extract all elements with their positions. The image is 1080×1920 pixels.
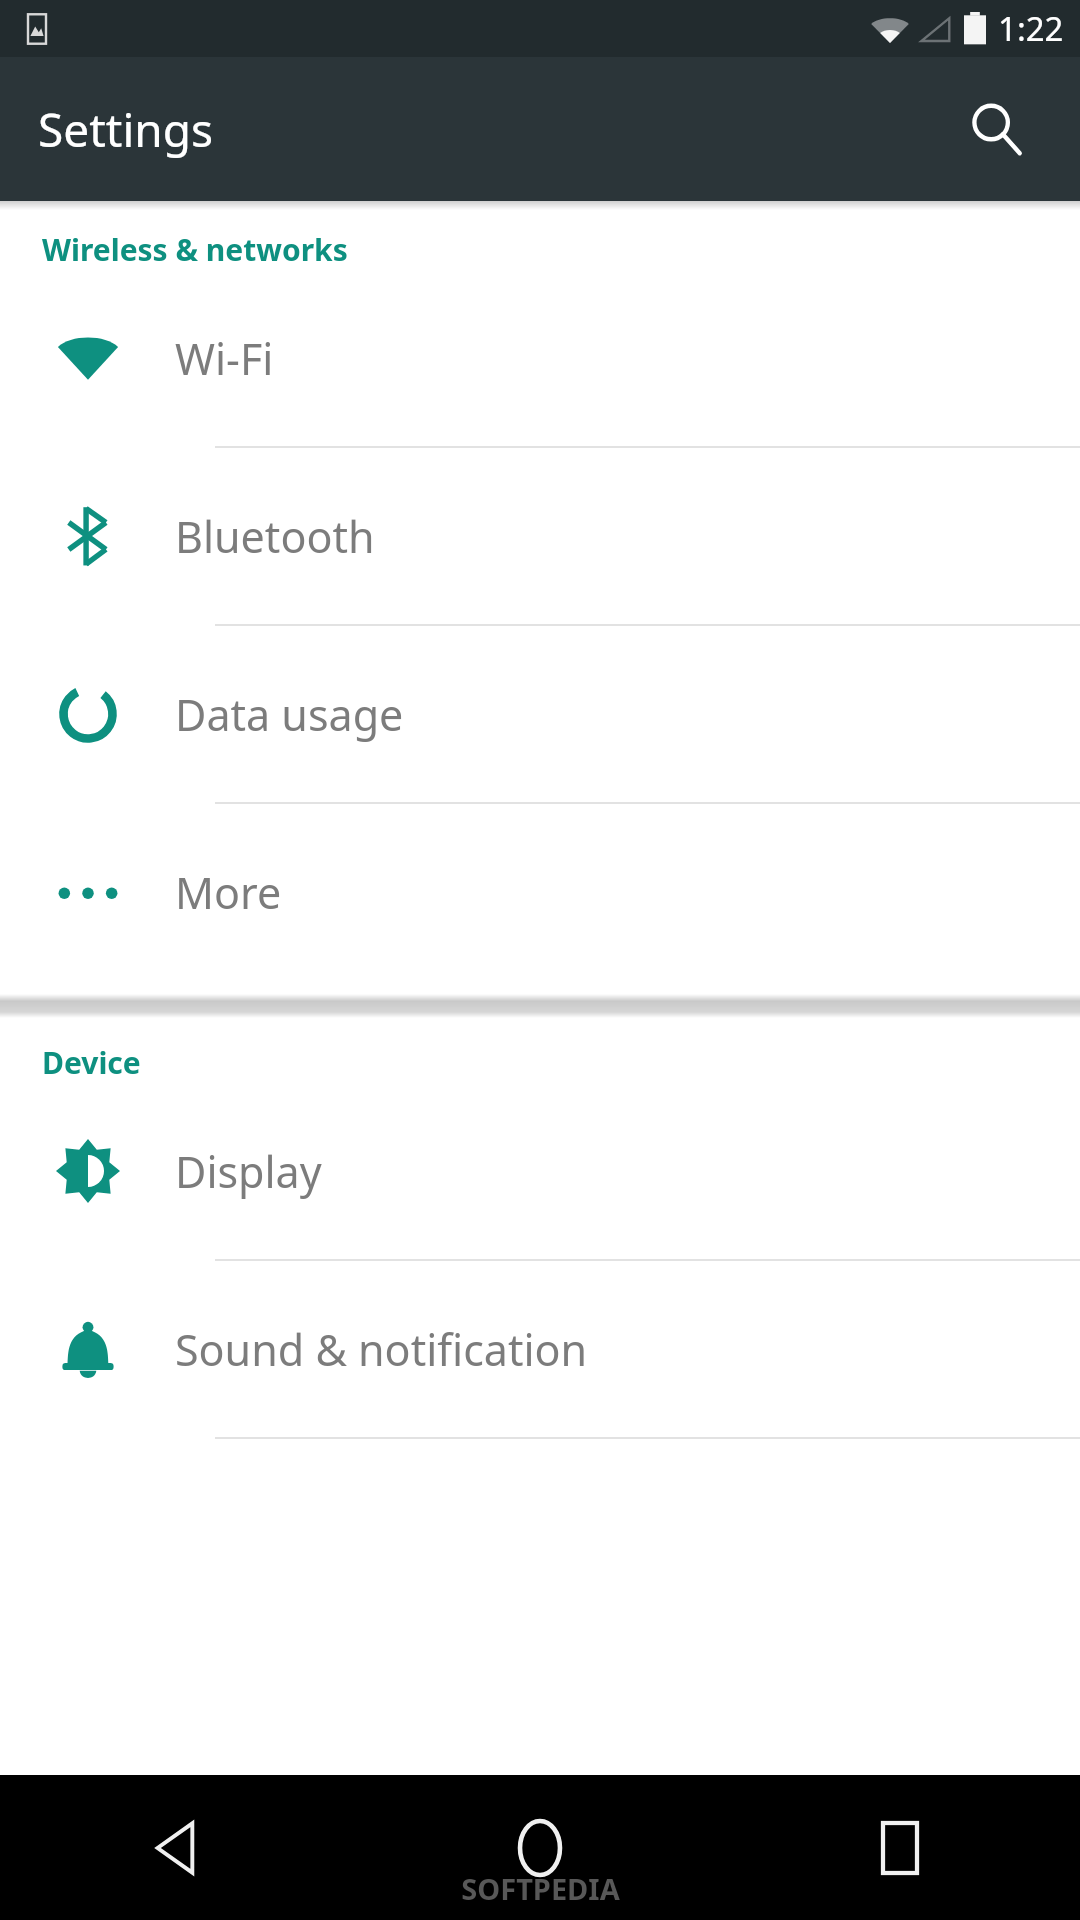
- staticText: Display: [175, 1142, 322, 1201]
- button[interactable]: Recent apps: [720, 1775, 1080, 1920]
- staticText: More: [175, 863, 282, 922]
- button[interactable]: Home: [360, 1775, 720, 1920]
- staticText: 1:22: [998, 6, 1064, 51]
- staticText: Settings: [38, 98, 214, 161]
- button[interactable]: Wi-Fi: [0, 270, 1080, 448]
- staticText: Wi-Fi: [175, 329, 274, 388]
- button[interactable]: Search: [946, 79, 1046, 179]
- button[interactable]: Back: [0, 1775, 360, 1920]
- button[interactable]: Sound & notification: [0, 1261, 1080, 1439]
- staticText: Wireless & networks: [42, 229, 348, 270]
- button[interactable]: Bluetooth: [0, 448, 1080, 626]
- staticText: SOFTPEDIA: [461, 1869, 620, 1908]
- button[interactable]: More: [0, 804, 1080, 980]
- staticText: Sound & notification: [175, 1320, 588, 1379]
- button[interactable]: Display: [0, 1083, 1080, 1261]
- button[interactable]: Data usage: [0, 626, 1080, 804]
- staticText: Data usage: [175, 685, 404, 744]
- staticText: Bluetooth: [175, 507, 375, 566]
- staticText: Device: [42, 1042, 141, 1083]
